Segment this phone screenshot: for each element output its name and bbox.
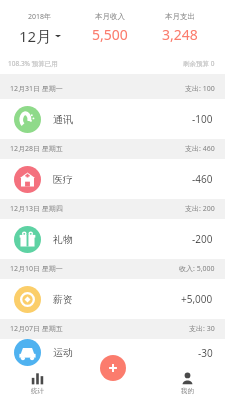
staticText: -100 <box>192 112 213 126</box>
staticText: 礼物 <box>53 233 73 246</box>
staticText: 3,248 <box>162 25 198 44</box>
staticText: 运动 <box>53 346 73 359</box>
staticText: 12月31日 星期一 <box>10 84 63 94</box>
button[interactable]: Add record <box>100 355 126 381</box>
button[interactable]: 通讯 <box>0 99 225 139</box>
staticText: 本月收入 <box>95 12 125 21</box>
staticText: 108.3% 预算已用 <box>8 59 58 68</box>
staticText: 收入: 5,000 <box>179 264 215 274</box>
staticText: 5,500 <box>92 25 128 44</box>
staticText: 支出: 30 <box>189 324 215 334</box>
button[interactable]: 医疗 <box>0 159 225 199</box>
staticText: 2018年 <box>28 12 52 22</box>
staticText: 剩余预算 0 <box>183 59 215 68</box>
staticText: 12月28日 星期五 <box>10 144 63 154</box>
staticText: -200 <box>192 232 213 246</box>
staticText: 统计 <box>31 387 44 395</box>
staticText: 支出: 200 <box>185 204 215 214</box>
staticText: 我的 <box>181 387 194 395</box>
staticText: 医疗 <box>53 173 73 186</box>
button[interactable]: 统计 <box>0 366 75 400</box>
button[interactable]: 我的 <box>150 366 225 400</box>
staticText: 12月13日 星期四 <box>10 204 63 214</box>
staticText: -30 <box>198 346 213 360</box>
staticText: 薪资 <box>53 293 73 306</box>
button[interactable]: 礼物 <box>0 219 225 259</box>
staticText: 本月支出 <box>165 12 195 21</box>
button[interactable]: 运动 <box>0 339 225 366</box>
button[interactable]: 12月 <box>19 26 61 46</box>
staticText: 支出: 100 <box>185 84 215 94</box>
staticText: 通讯 <box>53 113 73 126</box>
staticText: 支出: 460 <box>185 144 215 154</box>
staticText: +5,000 <box>181 292 213 306</box>
staticText: 12月10日 星期一 <box>10 264 63 274</box>
button[interactable]: 薪资 <box>0 279 225 319</box>
staticText: 12月 <box>19 26 52 46</box>
staticText: 12月07日 星期五 <box>10 324 63 334</box>
staticText: -460 <box>192 172 213 186</box>
